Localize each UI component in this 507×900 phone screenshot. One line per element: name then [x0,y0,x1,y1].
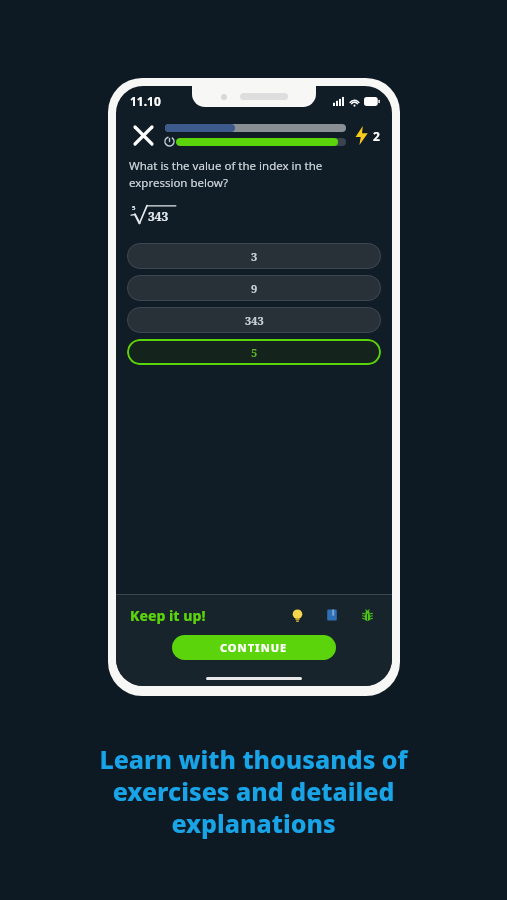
staticText: 5 [132,204,136,212]
button[interactable]: CONTINUE [172,635,336,660]
button[interactable]: Hint [286,604,308,626]
button[interactable]: 343 [127,307,381,333]
staticText: 9 [251,281,258,296]
staticText: CONTINUE [220,640,288,655]
staticText: 11.10 [130,93,161,109]
staticText: What is the value of the index in the ex… [129,158,323,190]
staticText: 2 [373,128,380,144]
staticText: Keep it up! [130,606,206,625]
button[interactable]: Close [128,120,158,150]
button[interactable]: Energy [355,126,380,145]
staticText: 343 [245,313,264,328]
button[interactable]: Report a bug [356,604,378,626]
button[interactable]: 9 [127,275,381,301]
staticText: 5 [251,345,258,360]
button[interactable]: 5 [127,339,381,365]
staticText: 343 [148,208,169,224]
button[interactable]: Book [321,604,343,626]
button[interactable]: 3 [127,243,381,269]
staticText: Learn with thousands of exercises and de… [99,742,408,840]
staticText: 3 [251,249,258,264]
